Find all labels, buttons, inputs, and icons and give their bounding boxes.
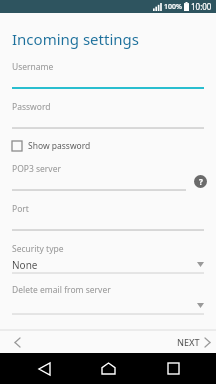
button[interactable]: Show password xyxy=(0,137,216,155)
button[interactable]: Security type xyxy=(0,243,216,274)
button[interactable]: Username xyxy=(0,61,216,89)
staticText: 100% xyxy=(164,2,182,12)
button[interactable]: Help xyxy=(194,175,207,188)
button[interactable]: NEXT xyxy=(171,331,216,353)
staticText: Security type xyxy=(12,243,64,255)
button[interactable]: POP3 server xyxy=(0,163,216,191)
staticText: POP3 server xyxy=(12,163,61,175)
staticText: Port xyxy=(12,203,29,215)
staticText: NEXT xyxy=(177,336,200,348)
staticText: Incoming settings xyxy=(12,29,139,49)
staticText: 10:00 xyxy=(191,1,212,12)
button[interactable]: Recent apps xyxy=(152,353,194,384)
button[interactable]: Back xyxy=(23,353,65,384)
staticText: Show password xyxy=(28,140,91,152)
staticText: Delete email from server xyxy=(12,284,111,296)
button[interactable]: Port xyxy=(0,203,216,231)
staticText: None xyxy=(12,258,38,271)
staticText: Username xyxy=(12,61,54,73)
staticText: Password xyxy=(12,101,51,113)
button[interactable]: Delete email from server xyxy=(0,284,216,315)
button[interactable]: Previous xyxy=(0,331,34,353)
button[interactable]: Home xyxy=(87,353,129,384)
button[interactable]: Password xyxy=(0,101,216,129)
staticText: ? xyxy=(199,176,203,187)
